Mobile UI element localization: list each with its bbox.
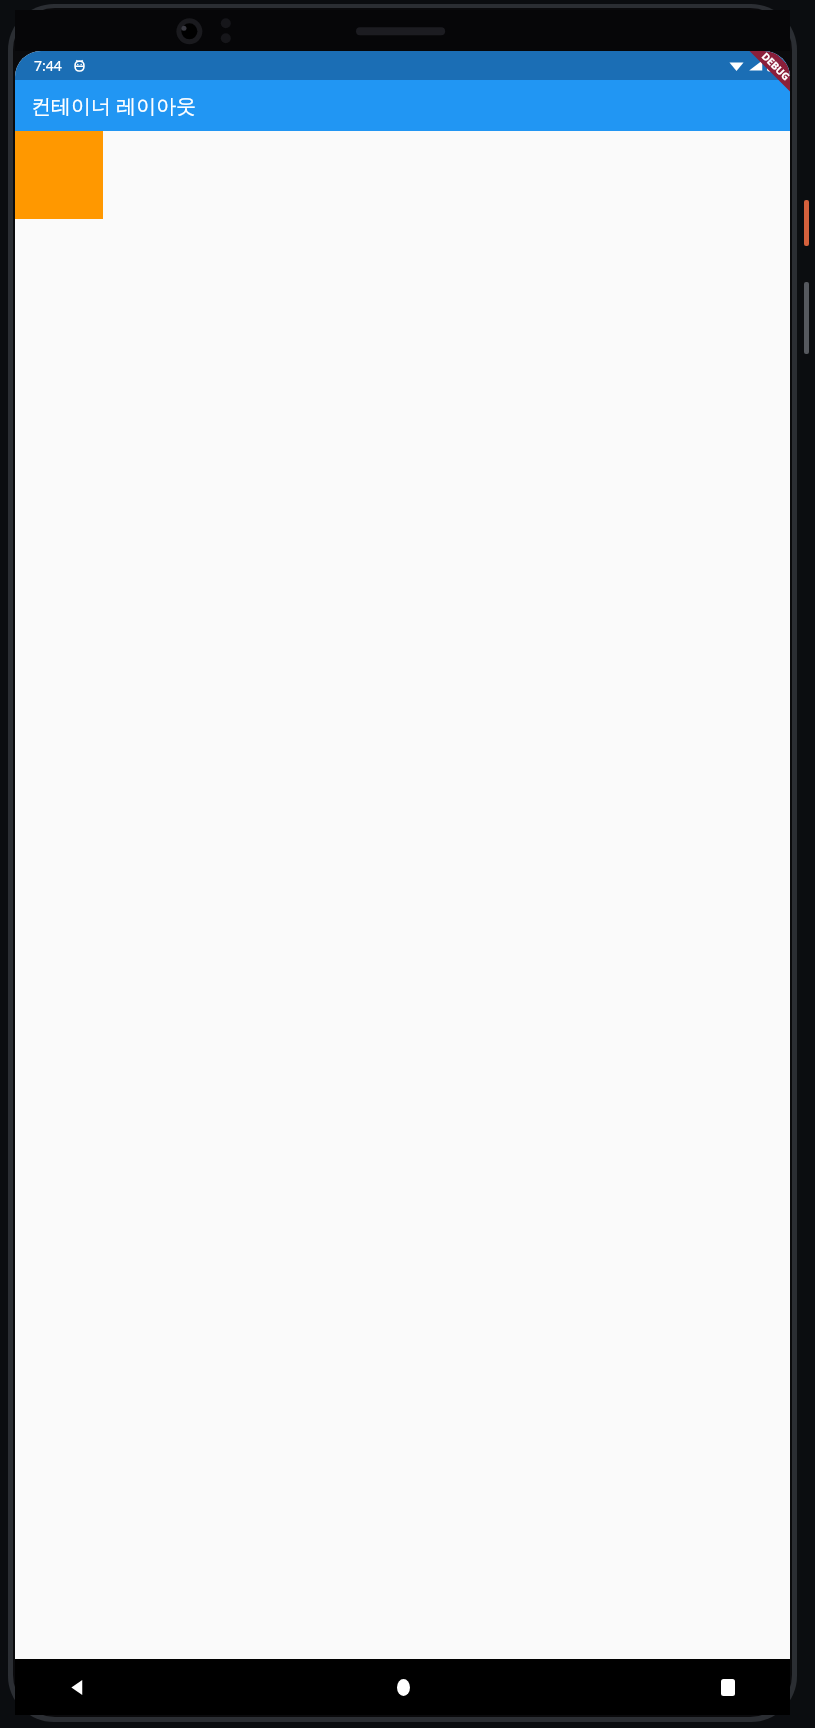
button[interactable]: Back — [51, 1661, 103, 1713]
button[interactable]: Home — [377, 1661, 429, 1713]
staticText: 7:44 — [34, 56, 62, 75]
staticText: DEBUG — [759, 51, 790, 83]
staticText: 컨테이너 레이아웃 — [31, 92, 197, 119]
button[interactable]: Recent apps — [702, 1661, 754, 1713]
